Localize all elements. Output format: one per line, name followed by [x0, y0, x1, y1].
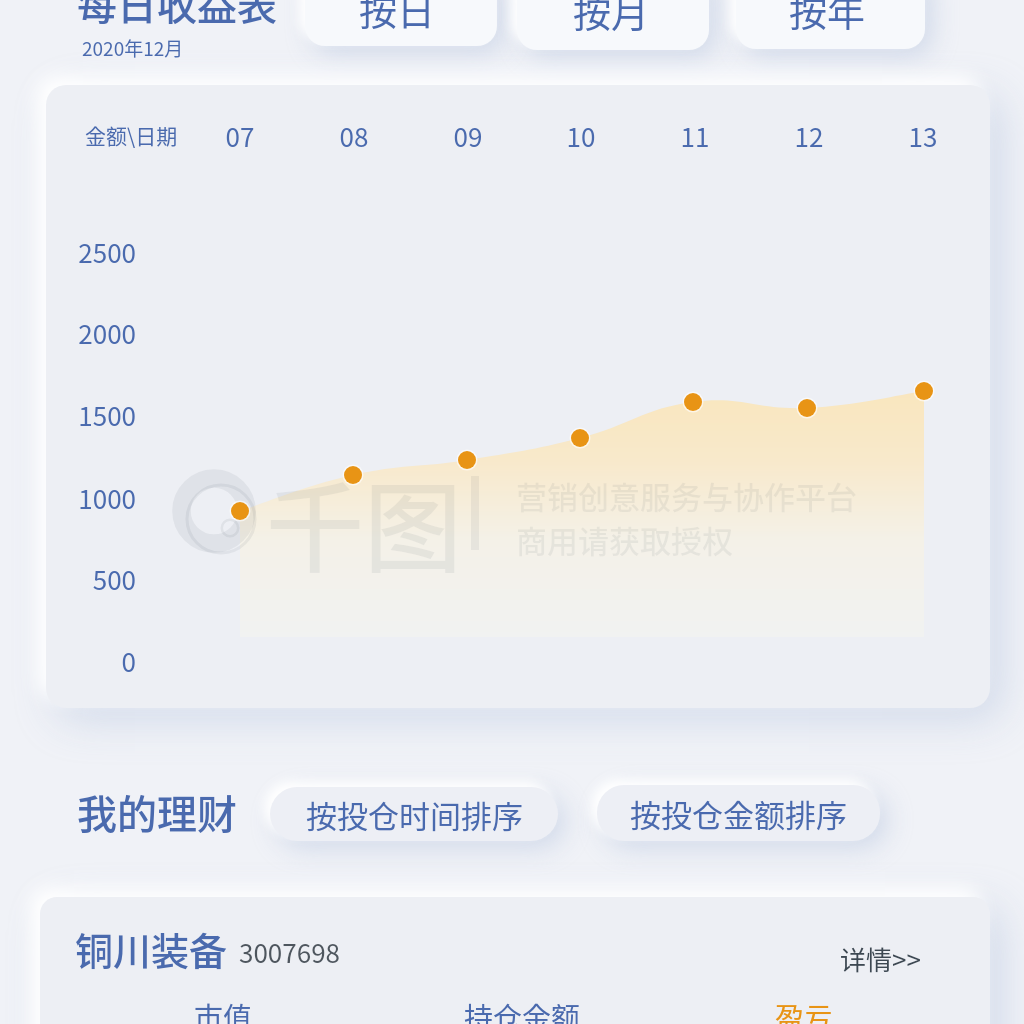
staticText: 按投仓金额排序: [630, 791, 847, 836]
staticText: 我的理财: [77, 783, 237, 841]
button[interactable]: 详情>>: [830, 936, 930, 982]
staticText: 13: [883, 117, 963, 149]
staticText: 金额\日期: [85, 120, 178, 150]
staticText: 持仓金额: [464, 995, 581, 1024]
staticText: 09: [428, 117, 508, 149]
staticText: 2000: [36, 314, 136, 346]
staticText: 按年: [789, 0, 866, 37]
staticText: 按日: [359, 0, 436, 36]
staticText: 每日收益表: [77, 0, 277, 32]
button[interactable]: 按投仓时间排序: [270, 787, 558, 841]
staticText: 2500: [36, 233, 136, 265]
staticText: 07: [200, 117, 280, 149]
staticText: 12: [769, 117, 849, 149]
button[interactable]: 按日: [301, 0, 493, 50]
staticText: 1000: [36, 479, 136, 511]
button[interactable]: 按投仓金额排序: [597, 785, 880, 841]
staticText: 08: [314, 117, 394, 149]
staticText: 按投仓时间排序: [306, 792, 523, 837]
staticText: 市值: [194, 995, 253, 1024]
staticText: 按月: [573, 0, 650, 38]
staticText: 2020年12月: [82, 34, 184, 62]
staticText: 营销创意服务与协作平台: [516, 473, 857, 518]
staticText: 详情>>: [840, 940, 921, 978]
staticText: 商用请获取授权: [516, 517, 733, 562]
staticText: 铜川装备: [75, 921, 228, 976]
staticText: 盈亏: [775, 995, 834, 1024]
staticText: 1500: [36, 396, 136, 428]
button[interactable]: 按月: [515, 0, 707, 54]
staticText: 500: [36, 560, 136, 592]
staticText: 10: [541, 117, 621, 149]
staticText: 11: [655, 117, 735, 149]
staticText: 千图: [266, 450, 463, 592]
staticText: 0: [36, 642, 136, 674]
button[interactable]: 按年: [733, 0, 922, 53]
staticText: 3007698: [239, 933, 341, 971]
